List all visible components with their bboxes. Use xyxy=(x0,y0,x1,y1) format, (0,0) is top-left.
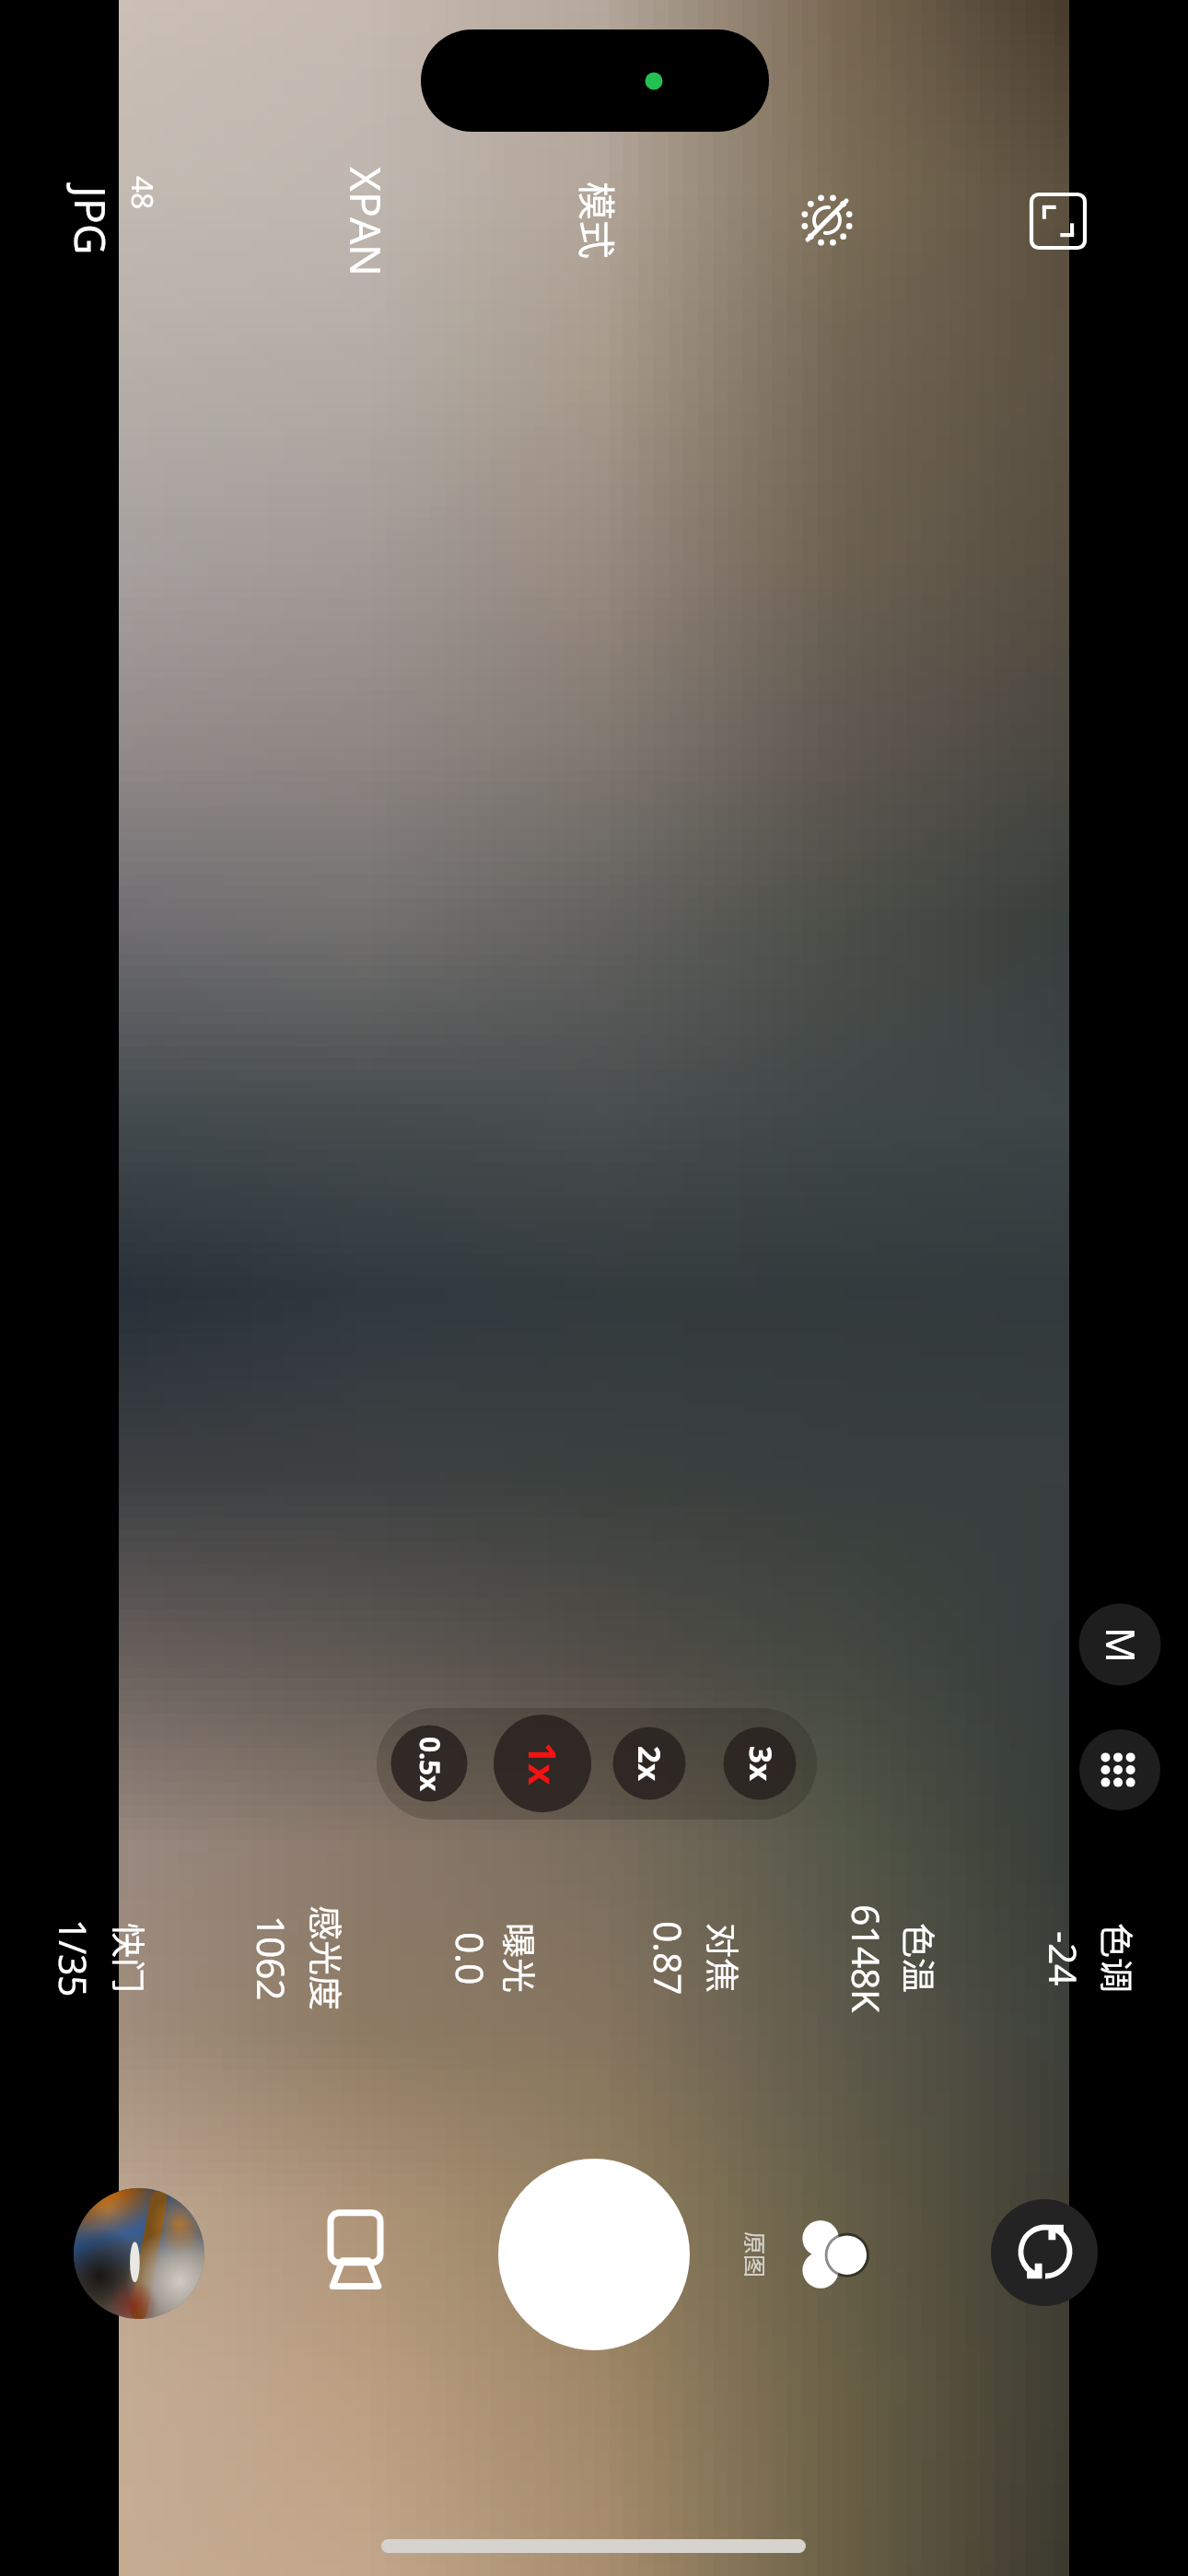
button[interactable]: 48 MP xyxy=(103,152,168,253)
button[interactable]: Shutter 1/35 xyxy=(37,1907,157,2082)
button[interactable]: Shutter xyxy=(498,2159,690,2350)
button[interactable]: ISO 1062 xyxy=(230,1907,359,2082)
button[interactable]: Zoom 1x xyxy=(475,1705,589,1820)
button[interactable]: Exposure 0.0 xyxy=(433,1907,543,2082)
button[interactable]: Zoom 3x xyxy=(718,1721,801,1804)
button[interactable]: More settings xyxy=(1079,1729,1160,1810)
button[interactable]: Lens mode xyxy=(309,2207,402,2300)
button[interactable]: Switch camera xyxy=(989,2199,1098,2308)
button[interactable]: Gallery xyxy=(74,2188,204,2319)
button[interactable]: JPG format xyxy=(18,147,101,286)
button[interactable]: Filters xyxy=(820,2207,912,2300)
button[interactable]: Focus 0.87 xyxy=(634,1907,744,2082)
button[interactable]: Flash off xyxy=(705,149,816,260)
button[interactable]: White balance 6148K xyxy=(829,1907,949,2082)
button[interactable]: Zoom 2x xyxy=(610,1721,693,1804)
button[interactable]: XPAN xyxy=(285,147,382,332)
button[interactable]: Manual mode xyxy=(1079,1604,1161,1686)
button[interactable]: Aspect ratio xyxy=(921,152,1027,258)
button[interactable]: Mode xyxy=(505,147,601,313)
button[interactable]: Tint -24 xyxy=(1031,1907,1151,2082)
button[interactable]: Original image xyxy=(726,2207,818,2300)
button[interactable]: Zoom 0.5x xyxy=(384,1721,467,1804)
